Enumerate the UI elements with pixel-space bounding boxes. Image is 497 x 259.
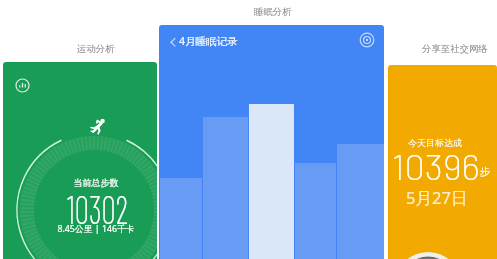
- staticText: 当前总步数: [19, 177, 157, 188]
- staticText: 运动分析: [77, 43, 115, 55]
- staticText: 4月睡眠记录: [179, 34, 238, 48]
- button[interactable]: 今天目标达成: [388, 65, 497, 259]
- staticText: 分享至社交网络: [422, 43, 488, 55]
- staticText: 10302: [67, 184, 128, 230]
- staticText: 步: [480, 165, 490, 178]
- staticText: 8.45公里 | 146千卡: [19, 223, 157, 235]
- button[interactable]: Activity stats: [15, 78, 30, 93]
- button[interactable]: Back: [165, 34, 181, 50]
- button[interactable]: Target: [359, 32, 375, 48]
- button[interactable]: Activity stats: [3, 62, 157, 259]
- staticText: 10396: [392, 144, 480, 187]
- staticText: 睡眠分析: [254, 6, 292, 18]
- staticText: 5月27日: [406, 186, 468, 209]
- staticText: 今天目标达成: [408, 137, 462, 148]
